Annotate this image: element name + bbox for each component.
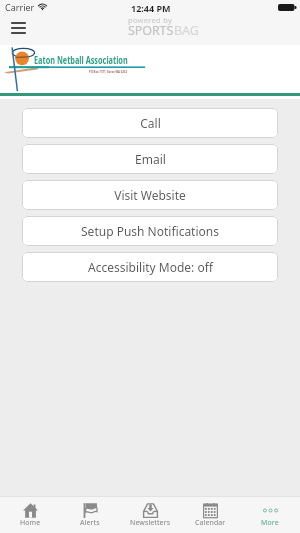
staticText: 12:44 PM bbox=[131, 2, 171, 14]
staticText: More bbox=[261, 518, 279, 528]
button[interactable]: More bbox=[240, 497, 300, 533]
button[interactable]: Calendar bbox=[180, 497, 240, 533]
staticText: SPORTS bbox=[128, 22, 174, 39]
button[interactable]: Email bbox=[22, 144, 278, 174]
staticText: Home bbox=[20, 518, 41, 528]
staticText: Newsletters bbox=[130, 518, 171, 528]
staticText: Alerts bbox=[80, 518, 100, 528]
button[interactable]: Accessibility Mode: off bbox=[22, 252, 278, 282]
button[interactable]: Alerts bbox=[60, 497, 120, 533]
staticText: Accessibility Mode: off bbox=[88, 259, 213, 275]
staticText: PO Box 7371, Eaton WA 6232 bbox=[89, 70, 127, 74]
button[interactable]: Call bbox=[22, 108, 278, 138]
button[interactable]: Newsletters bbox=[120, 497, 180, 533]
staticText: BAG bbox=[174, 22, 199, 39]
staticText: Visit Website bbox=[114, 187, 186, 203]
button[interactable]: Menu bbox=[4, 16, 32, 40]
staticText: Call bbox=[140, 115, 161, 131]
staticText: Calendar bbox=[195, 518, 226, 528]
staticText: Setup Push Notifications bbox=[81, 223, 219, 239]
staticText: Eaton Netball Association bbox=[34, 52, 128, 67]
staticText: powered by bbox=[128, 15, 173, 25]
staticText: Email bbox=[135, 151, 166, 167]
staticText: Carrier bbox=[5, 1, 35, 13]
button[interactable]: Visit Website bbox=[22, 180, 278, 210]
button[interactable]: Setup Push Notifications bbox=[22, 216, 278, 246]
button[interactable]: Home bbox=[0, 497, 60, 533]
